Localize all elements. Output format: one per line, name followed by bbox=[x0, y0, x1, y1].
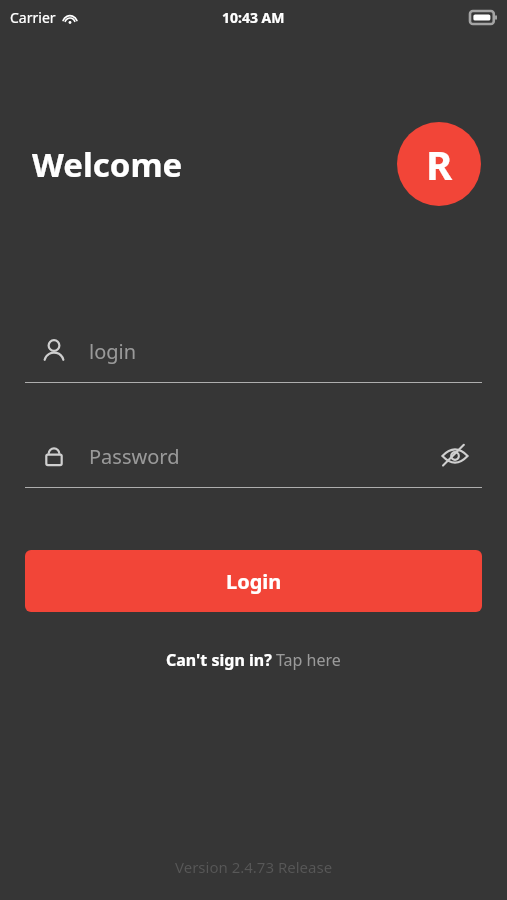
staticText: login bbox=[89, 338, 137, 365]
button[interactable]: Login bbox=[25, 550, 482, 612]
button[interactable]: Show password bbox=[432, 433, 478, 479]
staticText: R bbox=[426, 137, 453, 191]
staticText: Can't sign in? Tap here bbox=[166, 649, 341, 671]
staticText: Password bbox=[89, 443, 180, 470]
staticText: Welcome bbox=[32, 142, 183, 187]
other: App logo bbox=[397, 122, 481, 206]
button[interactable]: Password bbox=[25, 425, 482, 487]
button[interactable]: login bbox=[25, 320, 482, 382]
button[interactable]: Can't sign in? Tap here bbox=[166, 649, 341, 671]
staticText: Carrier bbox=[10, 8, 56, 27]
staticText: Version 2.4.73 Release bbox=[175, 857, 333, 877]
staticText: Login bbox=[226, 568, 282, 595]
staticText: 10:43 AM bbox=[222, 8, 285, 27]
